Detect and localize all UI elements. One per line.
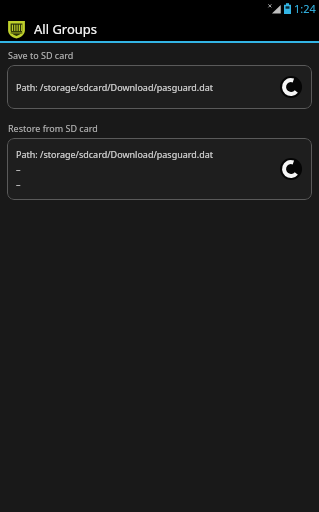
staticText: Path: /storage/sdcard/Download/pasguard.… [16,148,214,160]
staticText: Save to SD card [8,49,74,61]
button[interactable]: Progress [279,75,303,99]
button[interactable]: App icon [0,16,319,41]
staticText: All Groups [34,20,98,38]
staticText: – [16,163,21,175]
other: App icon [6,18,27,39]
button[interactable]: Restore from SD card [7,138,312,200]
button[interactable]: Progress [279,157,303,181]
staticText: – [16,178,21,190]
staticText: 1:24 [294,1,316,16]
staticText: Restore from SD card [8,122,98,134]
staticText: Path: /storage/sdcard/Download/pasguard.… [16,81,214,93]
button[interactable]: Save to SD card [7,65,312,109]
